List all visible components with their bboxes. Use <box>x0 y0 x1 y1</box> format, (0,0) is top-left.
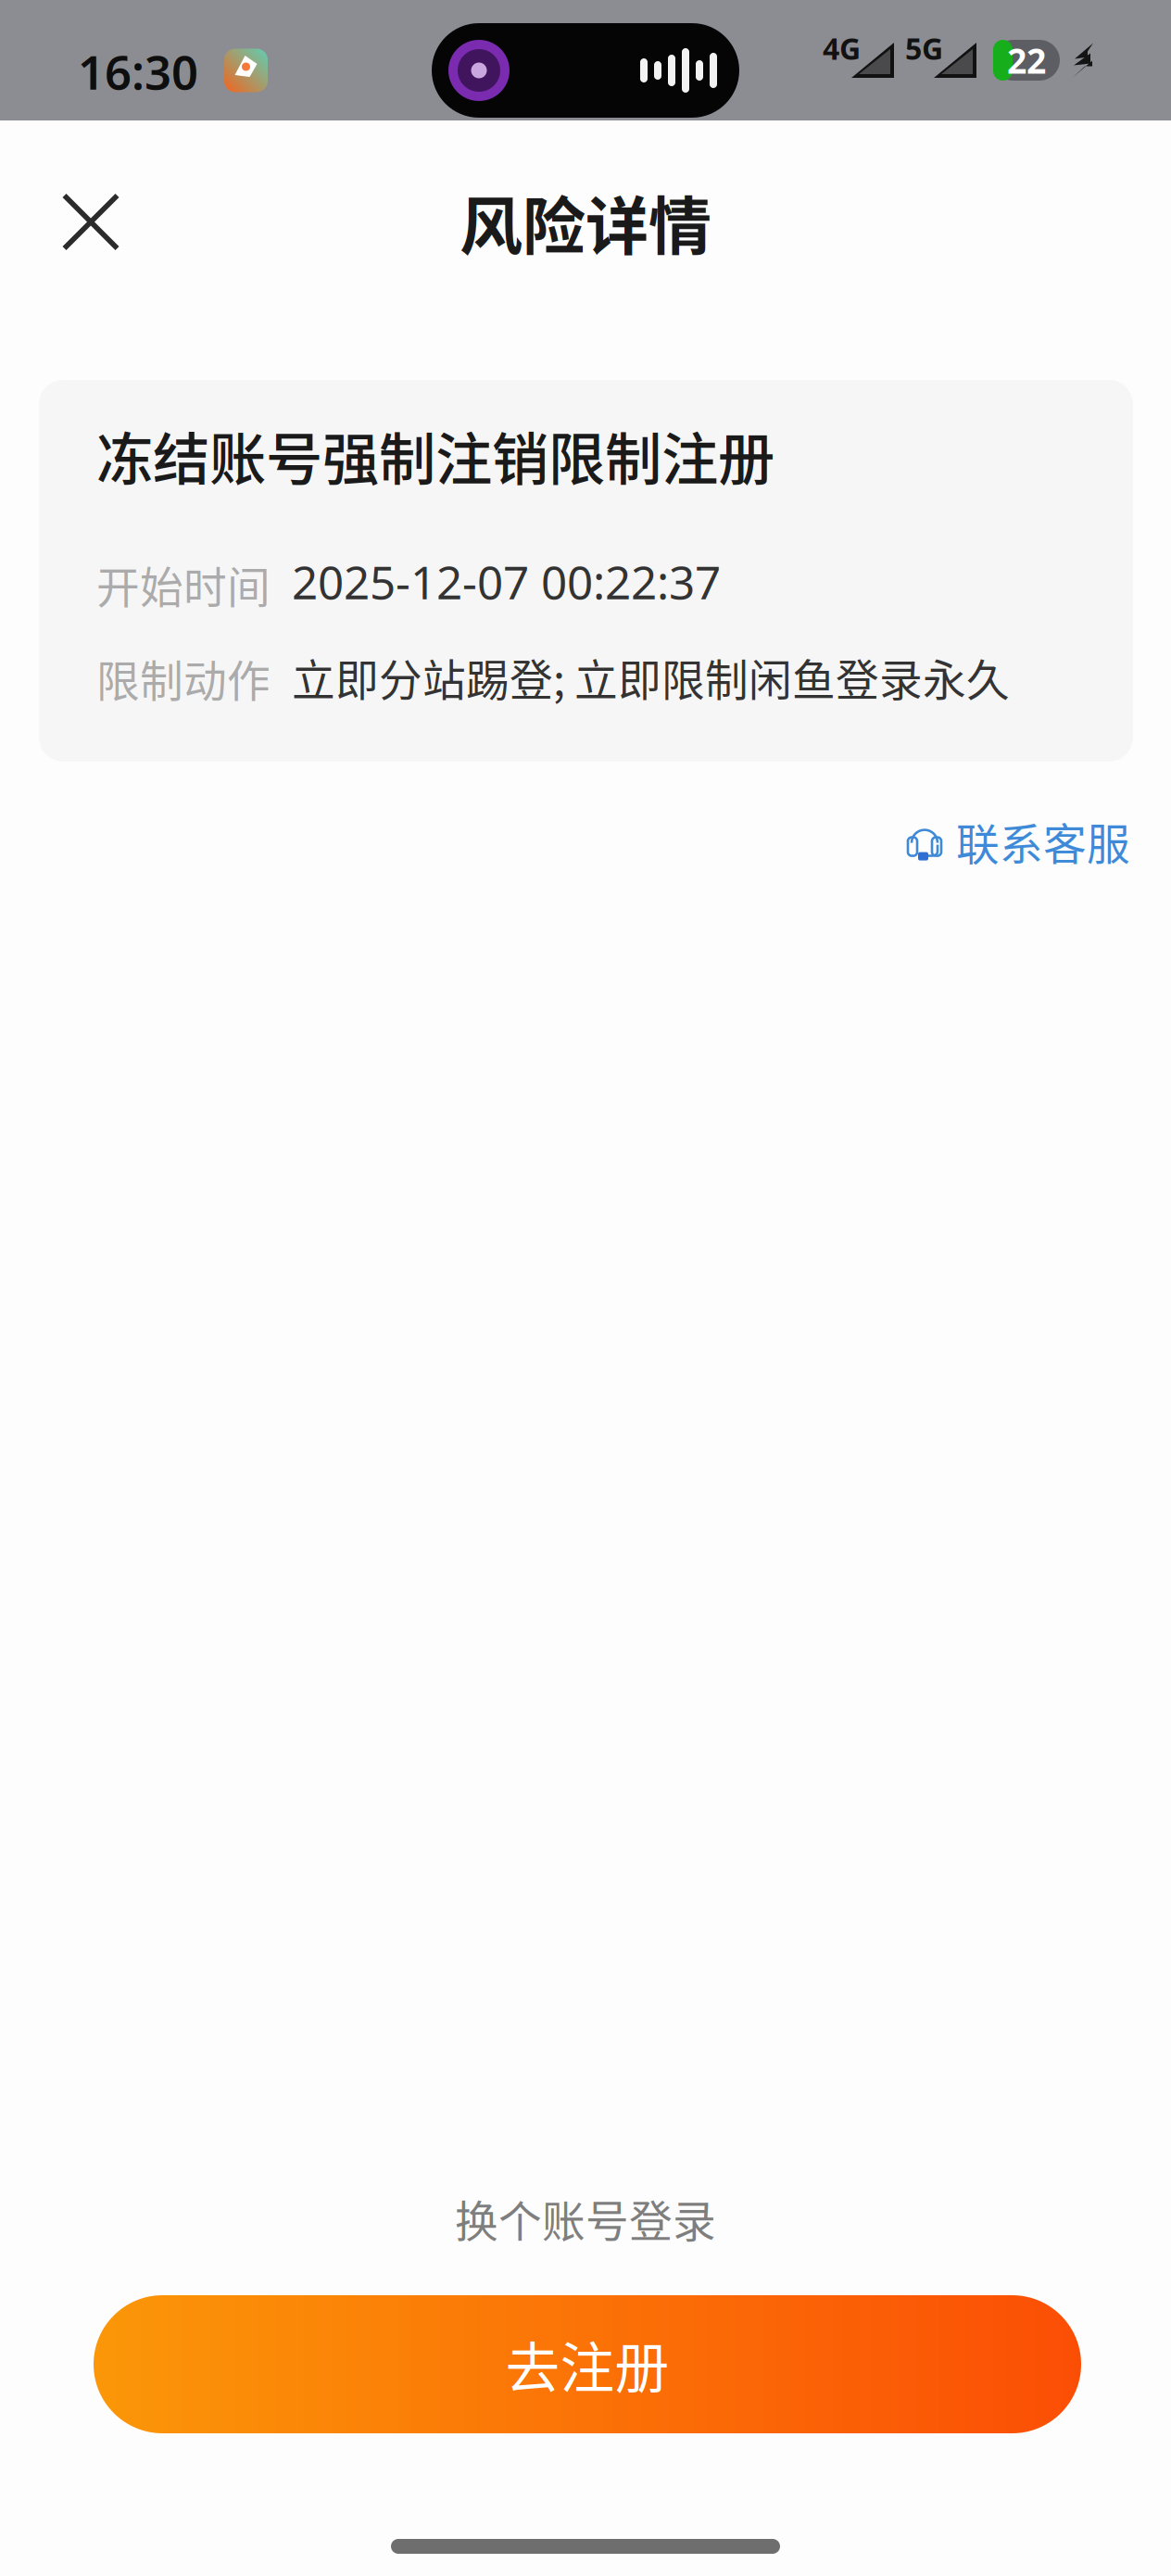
button[interactable]: Close <box>0 157 182 287</box>
staticText: 去注册 <box>505 2325 669 2404</box>
staticText: 5G <box>905 29 943 68</box>
staticText: 16:30 <box>78 40 198 103</box>
staticText: 限制动作 <box>96 647 271 709</box>
staticText: 开始时间 <box>96 553 271 616</box>
staticText: 联系客服 <box>956 810 1130 872</box>
staticText: 22 <box>1007 37 1046 83</box>
button[interactable]: 去注册 <box>0 2295 1171 2433</box>
staticText: 立即分站踢登; 立即限制闲鱼登录永久 <box>292 646 1010 708</box>
button[interactable]: 联系客服 <box>908 795 1130 887</box>
staticText: 4G <box>823 29 861 68</box>
staticText: 冻结账号强制注销限制注册 <box>96 414 774 496</box>
staticText: 换个账号登录 <box>455 2187 716 2250</box>
button[interactable]: 换个账号登录 <box>427 2191 744 2245</box>
staticText: 2025-12-07 00:22:37 <box>292 551 721 612</box>
staticText: 风险详情 <box>460 176 711 268</box>
